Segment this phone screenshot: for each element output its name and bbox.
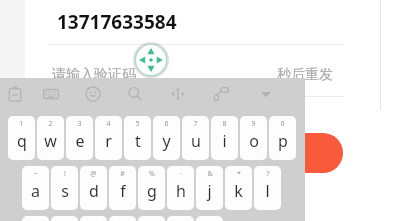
staticText: 2 — [48, 119, 53, 129]
button[interactable]: · — [167, 166, 194, 210]
staticText: g — [147, 180, 157, 202]
staticText: 5 — [135, 119, 140, 129]
staticText: p — [278, 130, 288, 152]
staticText: f — [120, 180, 126, 202]
button[interactable]: ! — [51, 166, 78, 210]
staticText: q — [17, 130, 27, 152]
staticText: k — [234, 180, 243, 202]
button[interactable]: # — [109, 166, 136, 210]
staticText: 13717633584 — [57, 9, 177, 35]
staticText: i — [222, 130, 227, 152]
button[interactable]: 5 — [124, 116, 151, 160]
button[interactable]: b — [138, 216, 165, 221]
button[interactable]: v — [109, 216, 136, 221]
button[interactable]: Theme — [200, 78, 244, 110]
button[interactable]: ? — [254, 166, 281, 210]
button[interactable]: c — [80, 216, 107, 221]
button[interactable]: 3 — [66, 116, 93, 160]
staticText: a — [31, 180, 40, 202]
button[interactable]: Clipboard — [0, 78, 30, 110]
button[interactable] — [49, 133, 343, 173]
button[interactable]: m — [196, 216, 223, 221]
staticText: d — [89, 180, 99, 202]
button[interactable]: 9 — [240, 116, 267, 160]
staticText: 8 — [222, 119, 227, 129]
button[interactable]: ~ — [22, 166, 49, 210]
staticText: 请输入验证码 — [52, 66, 136, 84]
button[interactable]: 8 — [211, 116, 238, 160]
button[interactable]: x — [51, 216, 78, 221]
staticText: 4 — [106, 119, 111, 129]
staticText: u — [191, 130, 201, 152]
button[interactable]: 4 — [95, 116, 122, 160]
button[interactable]: Search — [114, 78, 156, 110]
staticText: * — [237, 169, 241, 179]
button[interactable]: 1 — [8, 116, 35, 160]
staticText: h — [176, 180, 186, 202]
staticText: % — [149, 169, 155, 179]
staticText: 7 — [193, 119, 198, 129]
staticText: l — [265, 180, 270, 202]
staticText: 0 — [280, 119, 285, 129]
button[interactable]: 2 — [37, 116, 64, 160]
button[interactable]: * — [225, 166, 252, 210]
button[interactable]: 0 — [269, 116, 296, 160]
button[interactable]: @ — [80, 166, 107, 210]
button[interactable]: 6 — [153, 116, 180, 160]
button[interactable]: 7 — [182, 116, 209, 160]
staticText: 9 — [251, 119, 256, 129]
button[interactable]: z — [22, 216, 49, 221]
staticText: & — [207, 169, 213, 179]
staticText: o — [249, 130, 259, 152]
button[interactable]: Keyboard layout — [30, 78, 72, 110]
staticText: · — [180, 169, 182, 179]
staticText: y — [162, 130, 171, 152]
staticText: t — [135, 130, 141, 152]
staticText: s — [61, 180, 69, 202]
staticText: e — [75, 130, 85, 152]
staticText: 3 — [77, 119, 82, 129]
staticText: 6 — [164, 119, 169, 129]
button[interactable]: More — [244, 78, 288, 110]
staticText: j — [207, 180, 212, 202]
staticText: @ — [90, 169, 97, 179]
button[interactable]: Move cursor — [133, 42, 169, 78]
staticText: w — [44, 130, 57, 152]
staticText: # — [120, 169, 125, 179]
staticText: ! — [64, 169, 66, 179]
staticText: r — [105, 130, 112, 152]
button[interactable]: n — [167, 216, 194, 221]
staticText: 1 — [19, 119, 24, 129]
button[interactable]: Move cursor — [156, 78, 200, 110]
button[interactable]: Emoji — [72, 78, 114, 110]
staticText: 秒后重发 — [277, 66, 333, 84]
staticText: ? — [266, 169, 270, 179]
staticText: ~ — [33, 169, 38, 179]
button[interactable]: & — [196, 166, 223, 210]
button[interactable]: % — [138, 166, 165, 210]
